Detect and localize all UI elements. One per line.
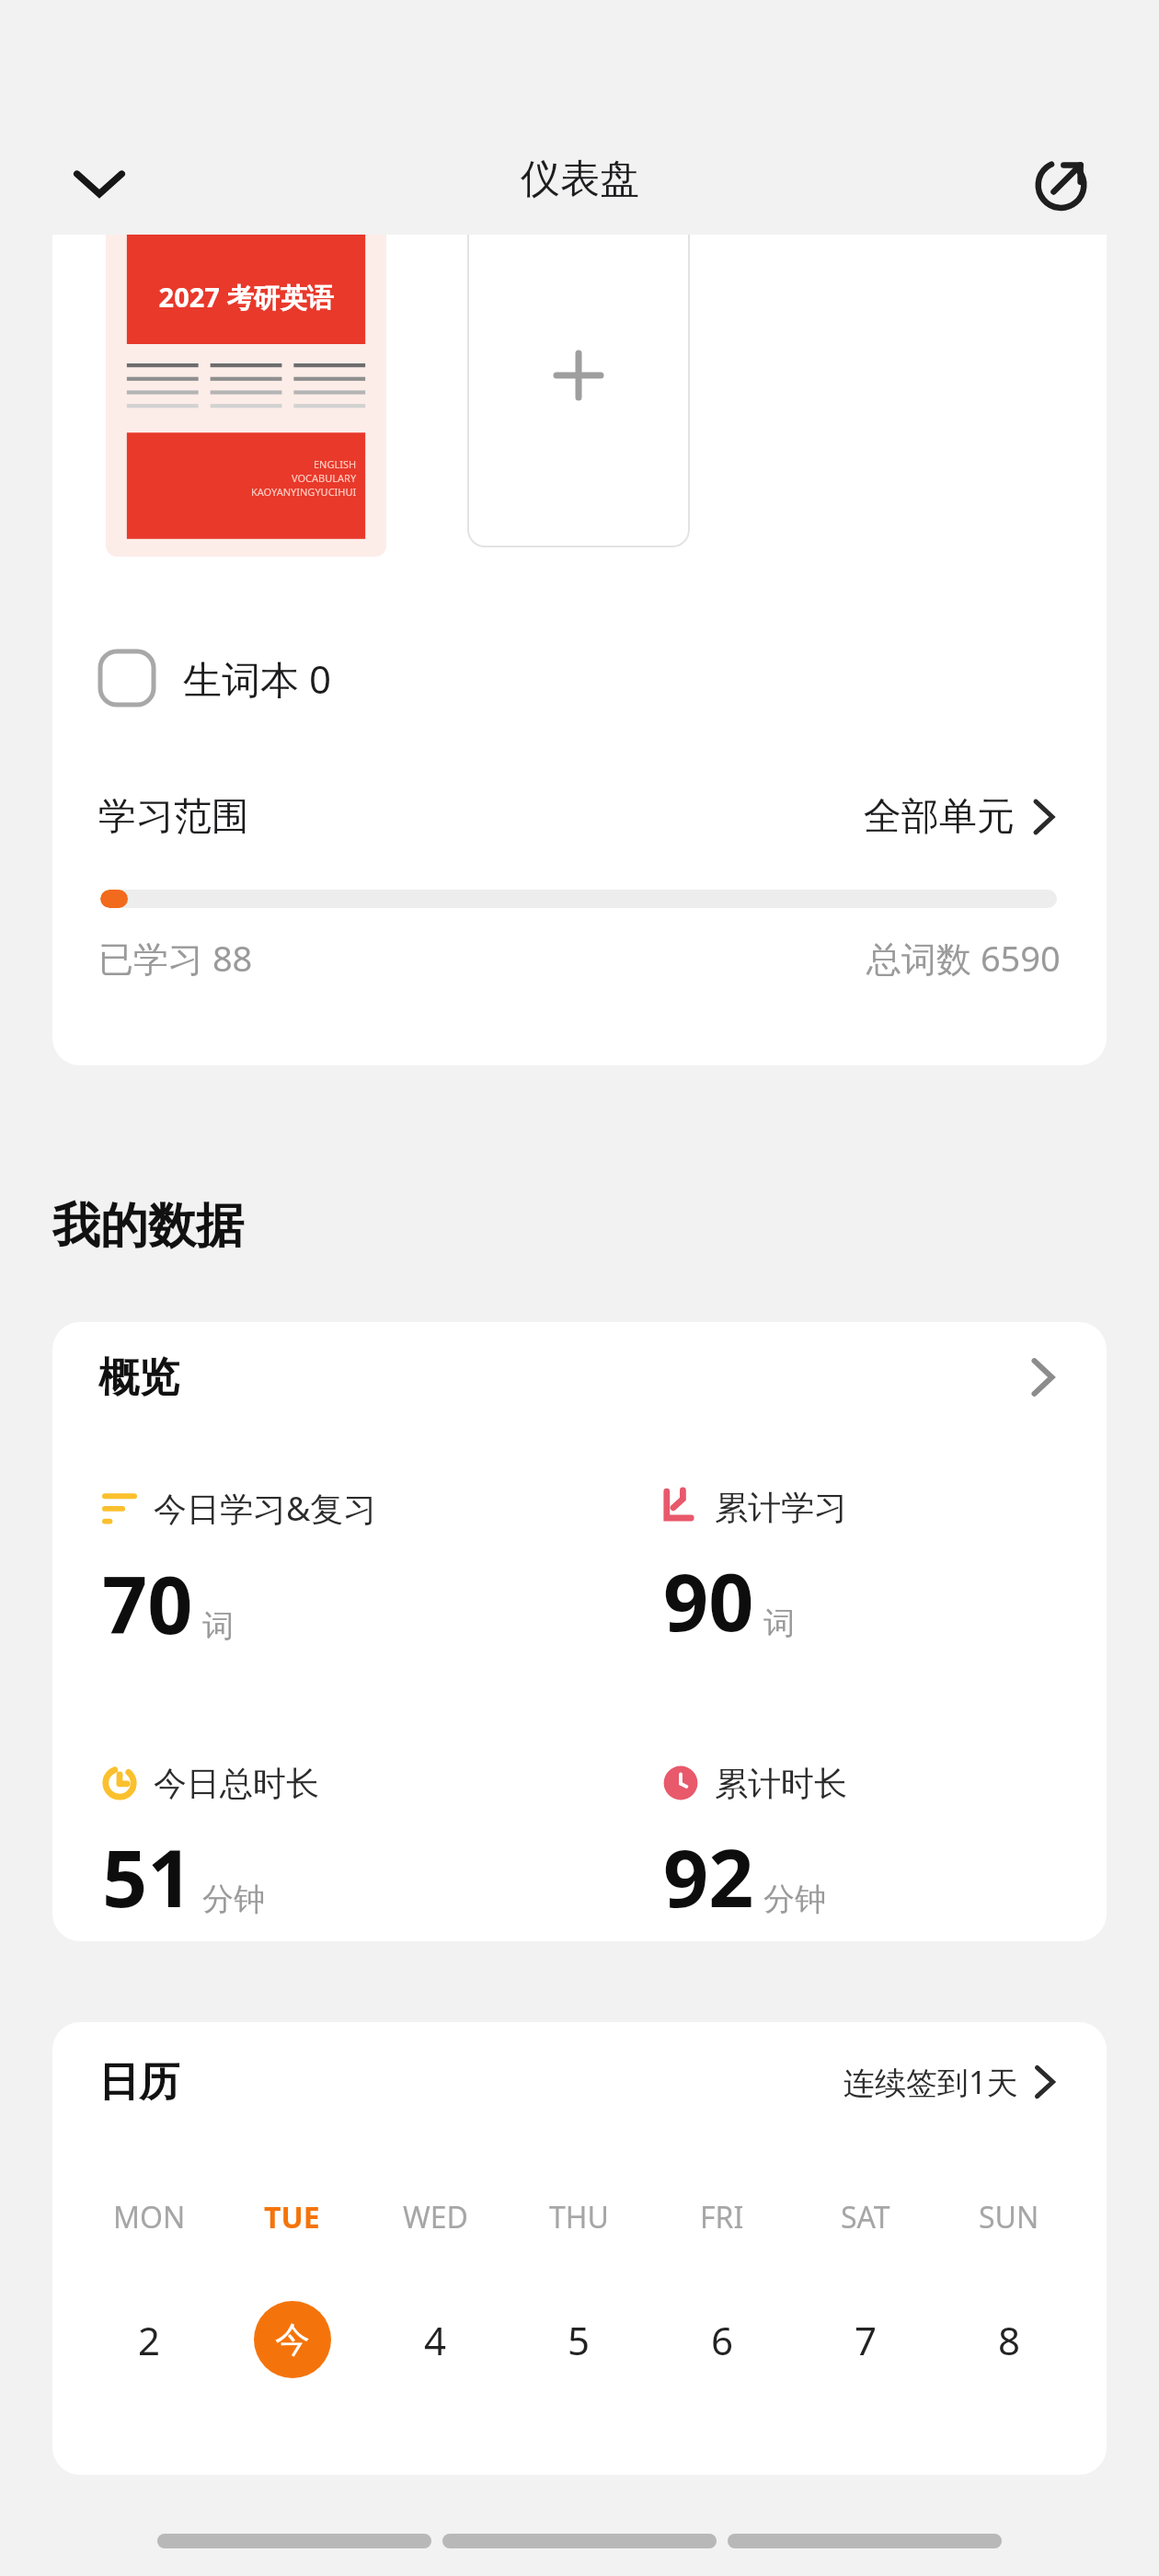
staticText: ENGLISH bbox=[314, 457, 357, 471]
button[interactable]: 5 bbox=[507, 2289, 650, 2390]
button[interactable]: 2 bbox=[78, 2289, 221, 2390]
button[interactable]: Today bbox=[254, 2301, 331, 2378]
button[interactable]: 学习范围 bbox=[98, 776, 1061, 858]
staticText: 学习范围 bbox=[98, 793, 249, 841]
staticText: 90 bbox=[663, 1547, 754, 1654]
staticText: MON bbox=[113, 2197, 186, 2237]
button[interactable]: 4 bbox=[363, 2289, 507, 2390]
button[interactable]: 8 bbox=[937, 2289, 1081, 2390]
staticText: 分钟 bbox=[763, 1880, 826, 1919]
staticText: THU bbox=[549, 2197, 609, 2237]
button[interactable]: 概览 bbox=[98, 1322, 1061, 1432]
staticText: 70 bbox=[102, 1549, 193, 1657]
staticText: 2 bbox=[138, 2314, 161, 2366]
button[interactable]: 生词本 0 bbox=[98, 632, 331, 724]
button[interactable]: 累计学习 bbox=[660, 1486, 1107, 1654]
staticText: 今 bbox=[275, 2317, 310, 2362]
staticText: 8 bbox=[998, 2314, 1021, 2366]
staticText: 2027 考研英语 bbox=[106, 279, 386, 316]
button[interactable]: 累计时长 bbox=[660, 1762, 1107, 1930]
staticText: 51 bbox=[102, 1823, 193, 1930]
staticText: 5 bbox=[568, 2314, 591, 2366]
staticText: 4 bbox=[424, 2314, 447, 2366]
button[interactable]: Collapse bbox=[55, 138, 143, 226]
staticText: 7 bbox=[855, 2314, 878, 2366]
button[interactable]: Share bbox=[1019, 138, 1107, 226]
staticText: 今日总时长 bbox=[154, 1763, 319, 1804]
staticText: 今日学习&复习 bbox=[154, 1486, 377, 1531]
staticText: 连续签到1天 bbox=[843, 2061, 1018, 2103]
staticText: 累计学习 bbox=[715, 1487, 847, 1528]
staticText: SUN bbox=[979, 2197, 1039, 2237]
staticText: 6 bbox=[711, 2314, 734, 2366]
staticText: 概览 bbox=[98, 1352, 179, 1403]
staticText: 日历 bbox=[98, 2057, 179, 2108]
button[interactable]: Add book bbox=[467, 235, 690, 547]
staticText: 总词数 6590 bbox=[866, 934, 1061, 982]
staticText: KAOYANYINGYUCIHUI bbox=[251, 485, 357, 499]
staticText: FRI bbox=[700, 2197, 744, 2237]
staticText: 92 bbox=[663, 1823, 754, 1930]
staticText: 已学习 88 bbox=[98, 934, 253, 982]
staticText: 我的数据 bbox=[52, 1196, 244, 1257]
staticText: 累计时长 bbox=[715, 1763, 847, 1804]
staticText: 分钟 bbox=[202, 1880, 265, 1919]
staticText: 词 bbox=[202, 1606, 234, 1646]
button[interactable]: 今日总时长 bbox=[98, 1762, 595, 1930]
button[interactable]: 今日学习&复习 bbox=[98, 1486, 595, 1657]
staticText: 生词本 0 bbox=[183, 652, 331, 705]
button[interactable]: 6 bbox=[650, 2289, 794, 2390]
staticText: SAT bbox=[841, 2197, 890, 2237]
button[interactable]: 7 bbox=[794, 2289, 937, 2390]
staticText: 词 bbox=[763, 1604, 795, 1643]
button[interactable]: 2027 考研英语 bbox=[106, 235, 386, 557]
staticText: 仪表盘 bbox=[521, 155, 639, 204]
button[interactable]: 日历 bbox=[98, 2022, 1061, 2142]
staticText: 全部单元 bbox=[864, 793, 1015, 841]
staticText: VOCABULARY bbox=[292, 471, 357, 485]
staticText: TUE bbox=[264, 2197, 320, 2237]
staticText: WED bbox=[403, 2197, 468, 2237]
